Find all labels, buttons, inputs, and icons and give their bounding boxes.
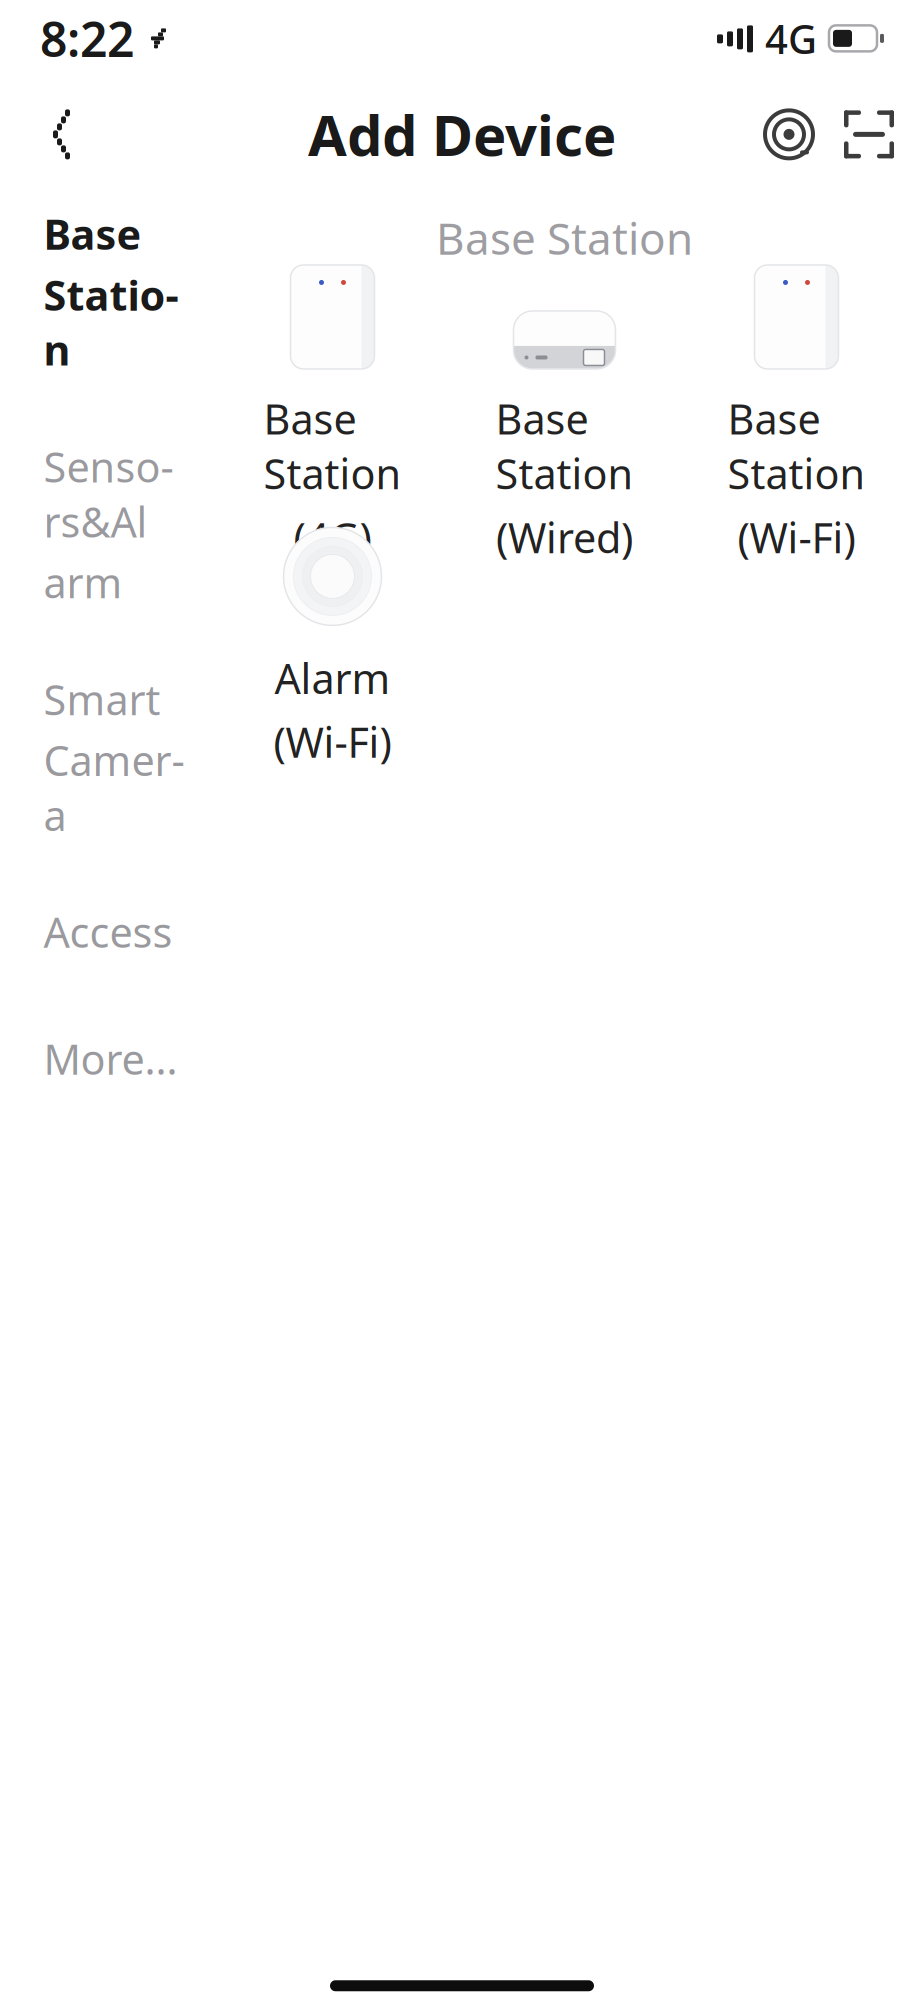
button[interactable]: Base (11, 206, 216, 377)
staticText: Alarm (274, 650, 390, 705)
staticText: arm (43, 555, 122, 610)
staticText: More... (43, 1031, 177, 1086)
staticText: (Wi-Fi) (737, 510, 855, 565)
staticText: Access (43, 904, 172, 959)
staticText: Station (43, 267, 178, 377)
button[interactable]: Alarm (216, 529, 448, 761)
button[interactable]: Access (11, 904, 216, 959)
button[interactable]: Base Station (448, 297, 680, 529)
button[interactable]: Smart (11, 672, 216, 842)
staticText: Base Station (436, 208, 693, 267)
button[interactable]: Sensors&Al (11, 439, 216, 610)
staticText: Camera (43, 733, 184, 842)
staticText: 8:22 (40, 6, 134, 70)
staticText: 4G (765, 12, 817, 65)
staticText: Base Station (263, 391, 401, 501)
button[interactable]: More... (11, 1031, 216, 1086)
button[interactable]: Base Station (680, 297, 912, 529)
staticText: (Wi-Fi) (273, 714, 391, 769)
staticText: Base Station (727, 391, 865, 501)
button[interactable]: Scan QR code (836, 101, 902, 167)
button[interactable]: Base Station (216, 297, 448, 529)
button[interactable]: Back (22, 101, 88, 167)
staticText: (4G) (293, 510, 371, 565)
staticText: (Wired) (496, 510, 633, 565)
button[interactable]: Nearby devices (756, 101, 822, 167)
staticText: Base (43, 206, 141, 261)
staticText: Smart (43, 672, 160, 727)
staticText: Add Device (308, 97, 616, 172)
staticText: Sensors&Al (43, 439, 173, 549)
staticText: Base Station (495, 391, 633, 501)
